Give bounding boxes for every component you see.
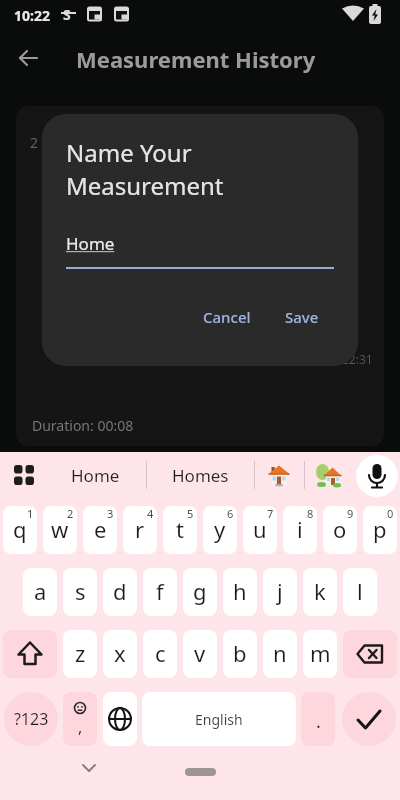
staticText: .	[316, 709, 321, 734]
button[interactable]: d	[103, 568, 137, 616]
button[interactable]: p	[363, 506, 397, 554]
button[interactable]: n	[263, 630, 297, 678]
staticText: j	[277, 576, 283, 606]
button[interactable]: r	[123, 506, 157, 554]
staticText: 2	[30, 133, 39, 152]
button[interactable]: i	[283, 506, 317, 554]
button[interactable]: s	[63, 568, 97, 616]
staticText: n	[273, 638, 287, 668]
button[interactable]: v	[183, 630, 217, 678]
button[interactable]: .	[301, 692, 335, 746]
button[interactable]: l	[343, 568, 377, 616]
staticText: 3	[107, 506, 114, 521]
button[interactable]: ,	[63, 692, 97, 746]
button[interactable]: a	[23, 568, 57, 616]
button[interactable]: t	[163, 506, 197, 554]
button[interactable]	[103, 692, 137, 746]
button[interactable]: ?123	[4, 692, 58, 746]
staticText: t	[176, 514, 184, 544]
staticText: Measurement History	[76, 44, 316, 74]
staticText: y	[214, 514, 226, 544]
button[interactable]	[342, 692, 396, 746]
staticText: x	[114, 638, 126, 668]
staticText: e	[94, 514, 107, 544]
staticText: 22:31	[342, 351, 373, 367]
button[interactable]: m	[303, 630, 337, 678]
button[interactable]: b	[223, 630, 257, 678]
staticText: 6	[227, 506, 234, 521]
button[interactable]: q	[3, 506, 37, 554]
staticText: u	[253, 514, 267, 544]
button[interactable]: c	[143, 630, 177, 678]
button[interactable]	[356, 455, 398, 497]
staticText: 10:22	[14, 6, 50, 25]
staticText: l	[357, 576, 363, 606]
button[interactable]: x	[103, 630, 137, 678]
staticText: Save	[285, 307, 319, 327]
staticText: z	[75, 638, 86, 668]
button[interactable]	[17, 46, 41, 70]
button[interactable]	[267, 464, 291, 488]
button[interactable]	[317, 464, 341, 488]
button[interactable]	[6, 461, 42, 489]
button[interactable]: f	[143, 568, 177, 616]
staticText: v	[194, 638, 206, 668]
staticText: q	[13, 514, 27, 544]
button[interactable]	[343, 630, 397, 678]
button[interactable]: k	[303, 568, 337, 616]
staticText: 9	[347, 506, 354, 521]
button[interactable]	[3, 630, 57, 678]
staticText: i	[297, 514, 303, 544]
staticText: o	[333, 514, 347, 544]
staticText: a	[34, 576, 47, 606]
staticText: Duration: 00:08	[32, 416, 134, 435]
staticText: ?123	[14, 708, 49, 730]
button[interactable]: e	[83, 506, 117, 554]
button[interactable]: h	[223, 568, 257, 616]
button[interactable]: y	[203, 506, 237, 554]
button[interactable]: w	[43, 506, 77, 554]
button[interactable]: u	[243, 506, 277, 554]
button[interactable]: o	[323, 506, 357, 554]
staticText: 8	[307, 506, 314, 521]
staticText: Name Your Measurement	[66, 136, 224, 202]
staticText: 2	[67, 506, 74, 521]
staticText: Homes	[172, 464, 229, 487]
staticText: m	[310, 638, 331, 668]
staticText: Home	[71, 464, 120, 487]
staticText: S	[63, 5, 71, 24]
staticText: g	[193, 576, 207, 606]
staticText: d	[113, 576, 127, 606]
button[interactable]: English	[142, 692, 296, 746]
staticText: 5	[187, 506, 194, 521]
staticText: r	[135, 514, 145, 544]
staticText: w	[51, 514, 69, 544]
staticText: f	[156, 576, 164, 606]
staticText: English	[195, 710, 243, 729]
staticText: s	[75, 576, 86, 606]
staticText: p	[373, 514, 387, 544]
staticText: 4	[147, 506, 154, 521]
button[interactable]: Save	[274, 300, 330, 334]
staticText: b	[233, 638, 247, 668]
button[interactable]: Cancel	[191, 300, 263, 334]
button[interactable]: Homes	[152, 455, 248, 495]
staticText: h	[233, 576, 247, 606]
staticText: Cancel	[203, 307, 251, 327]
button[interactable]: g	[183, 568, 217, 616]
staticText: ,	[78, 716, 83, 738]
button[interactable]: j	[263, 568, 297, 616]
staticText: 1	[27, 506, 34, 521]
button[interactable]: z	[63, 630, 97, 678]
button[interactable]: Home	[50, 455, 140, 495]
staticText: 7	[267, 506, 274, 521]
staticText: Home	[66, 232, 115, 255]
staticText: c	[155, 638, 166, 668]
staticText: 0	[387, 506, 394, 521]
staticText: k	[314, 576, 326, 606]
